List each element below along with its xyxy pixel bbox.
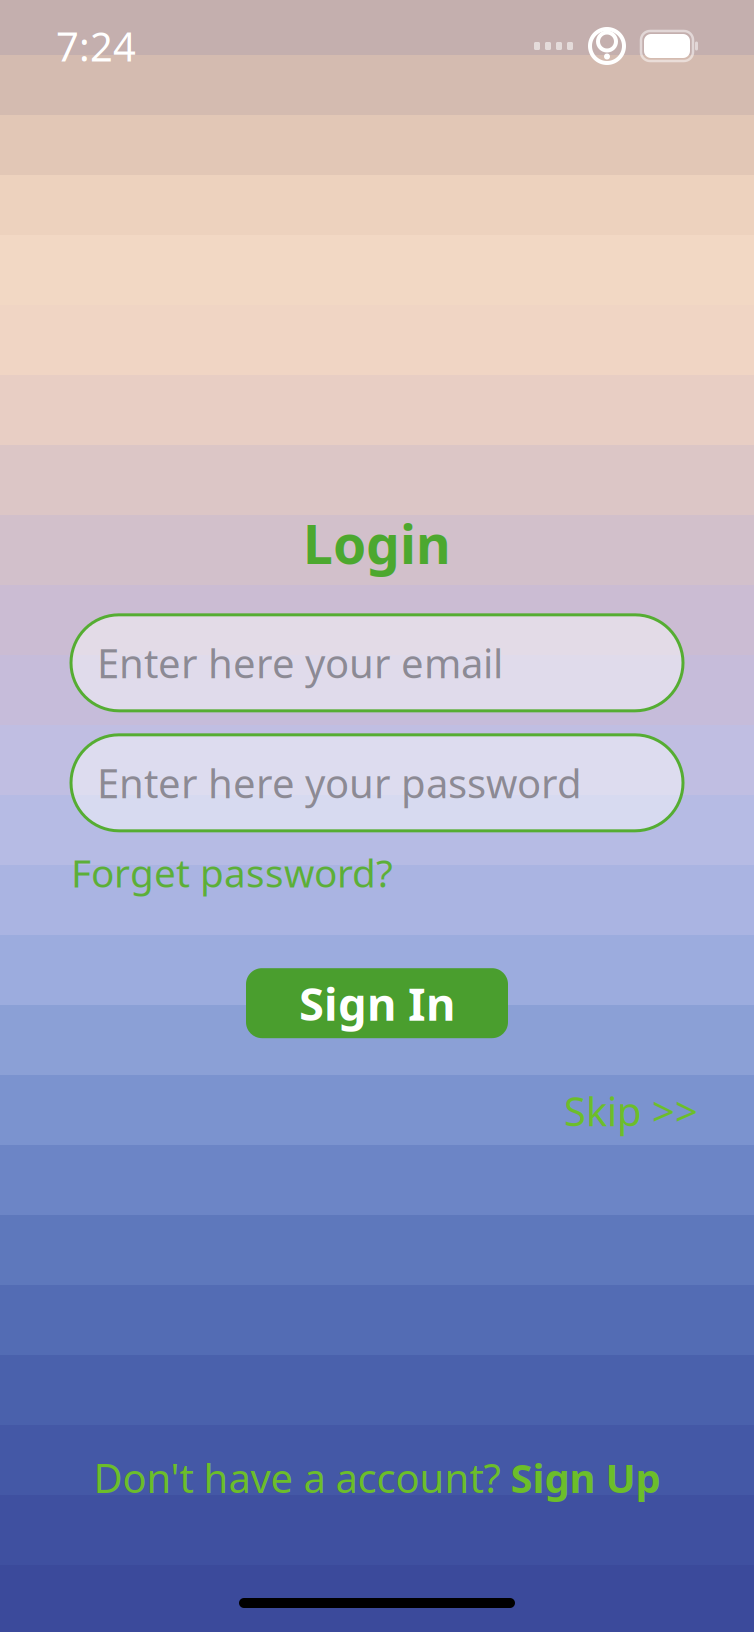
staticText: Enter here your password	[97, 756, 582, 809]
button[interactable]: Enter here your email	[71, 615, 683, 711]
button[interactable]: Forget password?	[71, 847, 393, 898]
staticText: Skip >>	[564, 1084, 698, 1137]
staticText: Enter here your email	[97, 636, 503, 689]
staticText: Sign Up	[510, 1451, 660, 1504]
staticText: Login	[303, 508, 451, 579]
button[interactable]: Sign In	[246, 968, 508, 1038]
button[interactable]: Don't have a account?	[93, 1451, 660, 1504]
button[interactable]: Enter here your password	[71, 735, 683, 831]
button[interactable]: Skip >>	[564, 1084, 698, 1137]
staticText: Forget password?	[71, 847, 393, 898]
staticText: Don't have a account?	[93, 1451, 510, 1504]
staticText: 7:24	[56, 19, 136, 72]
staticText: Sign In	[299, 973, 455, 1033]
